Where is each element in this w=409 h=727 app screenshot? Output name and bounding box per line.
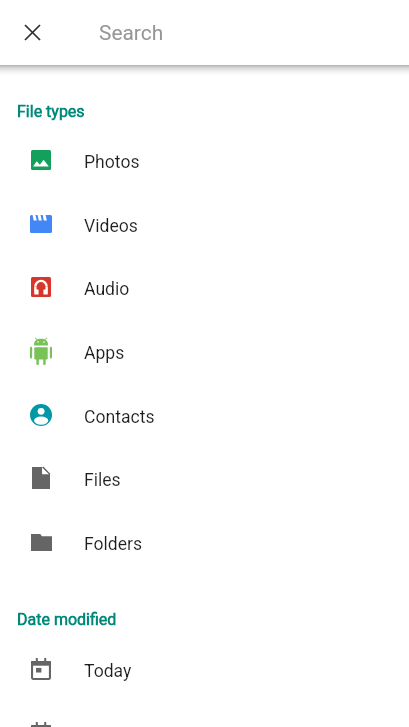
staticText: Apps (84, 343, 125, 364)
staticText: Contacts (84, 407, 155, 428)
button[interactable]: Folders (0, 510, 409, 574)
staticText: Audio (84, 279, 130, 300)
staticText: Date modified (17, 610, 117, 629)
button[interactable]: Contacts (0, 383, 409, 447)
staticText: Videos (84, 216, 138, 237)
button[interactable]: Yesterday (0, 701, 409, 727)
button[interactable]: Photos (0, 128, 409, 192)
button[interactable]: Today (0, 637, 409, 701)
staticText: Files (84, 470, 121, 491)
button[interactable]: Audio (0, 255, 409, 319)
button[interactable]: Close (4, 4, 60, 60)
staticText: Search (99, 21, 164, 45)
button[interactable]: Videos (0, 192, 409, 256)
button[interactable]: Files (0, 446, 409, 510)
staticText: Folders (84, 534, 143, 555)
button[interactable]: Apps (0, 319, 409, 383)
staticText: Photos (84, 152, 140, 173)
staticText: Today (84, 661, 132, 682)
staticText: File types (17, 102, 85, 121)
